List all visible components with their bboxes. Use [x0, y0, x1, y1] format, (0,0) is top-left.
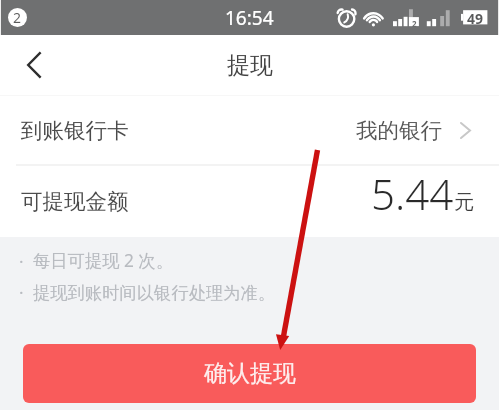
staticText: 元 — [454, 190, 474, 215]
staticText: 每日可提现 2 次。 — [33, 249, 173, 273]
staticText: 5.44 — [371, 165, 454, 222]
staticText: 16:54 — [225, 5, 274, 31]
staticText: · — [19, 250, 24, 273]
staticText: 我的银行 — [356, 117, 442, 144]
staticText: 49 — [467, 9, 484, 28]
staticText: 提现到账时间以银行处理为准。 — [33, 282, 276, 304]
button[interactable]: Back — [14, 45, 54, 85]
staticText: 2 — [13, 8, 22, 27]
button[interactable]: 可提现金额 — [0, 165, 499, 237]
staticText: 2 — [412, 18, 417, 29]
button[interactable]: 到账银行卡 — [0, 96, 499, 164]
staticText: · — [19, 281, 24, 304]
staticText: 确认提现 — [204, 359, 296, 388]
button[interactable]: 确认提现 — [23, 344, 476, 403]
staticText: 到账银行卡 — [21, 117, 129, 144]
staticText: 提现 — [227, 51, 273, 80]
staticText: 可提现金额 — [21, 188, 129, 215]
